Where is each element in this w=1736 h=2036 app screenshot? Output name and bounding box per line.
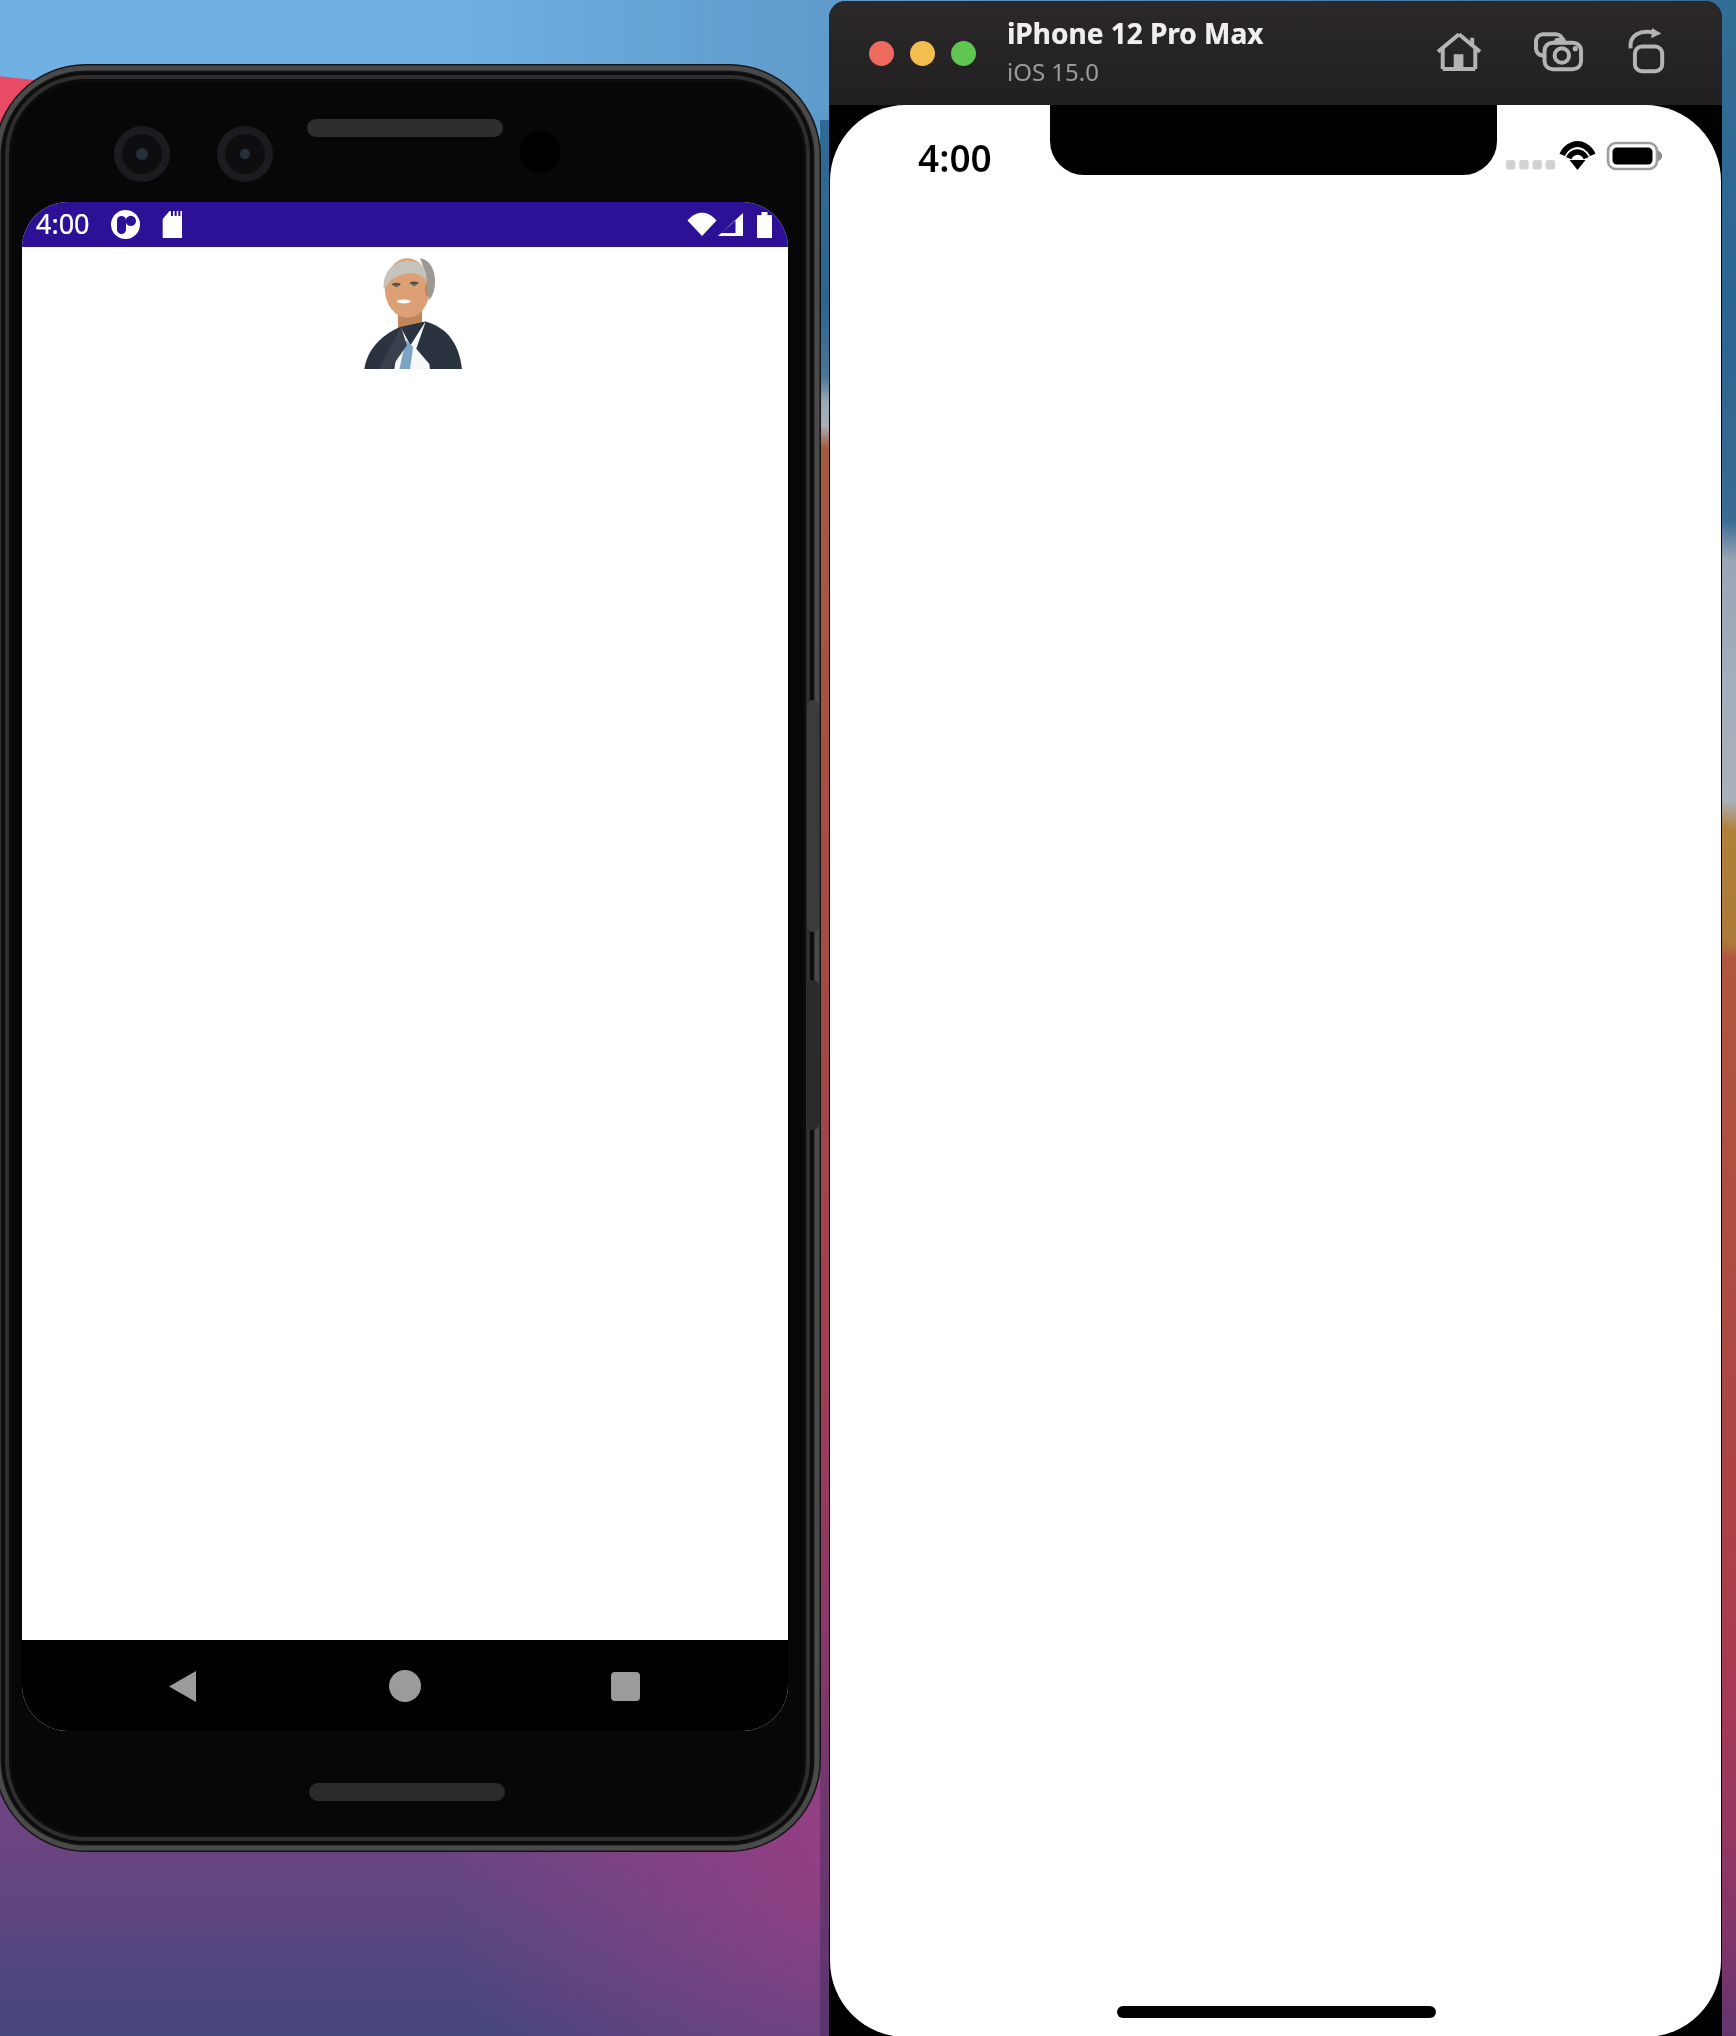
staticText: iOS 15.0 [1007,55,1099,88]
staticText: 4:00 [36,205,90,242]
button[interactable]: Screenshot [1528,21,1588,81]
button[interactable]: Home [373,1654,437,1718]
button[interactable]: Recent apps [593,1654,657,1718]
button[interactable]: Rotate [1619,21,1679,81]
button[interactable]: Zoom window [951,41,976,66]
staticText: iPhone 12 Pro Max [1007,14,1264,52]
button[interactable]: Home [1429,21,1489,81]
button[interactable]: Back [150,1654,214,1718]
staticText: 4:00 [918,132,992,182]
button[interactable]: Minimise window [910,41,935,66]
button[interactable]: Close window [869,41,894,66]
